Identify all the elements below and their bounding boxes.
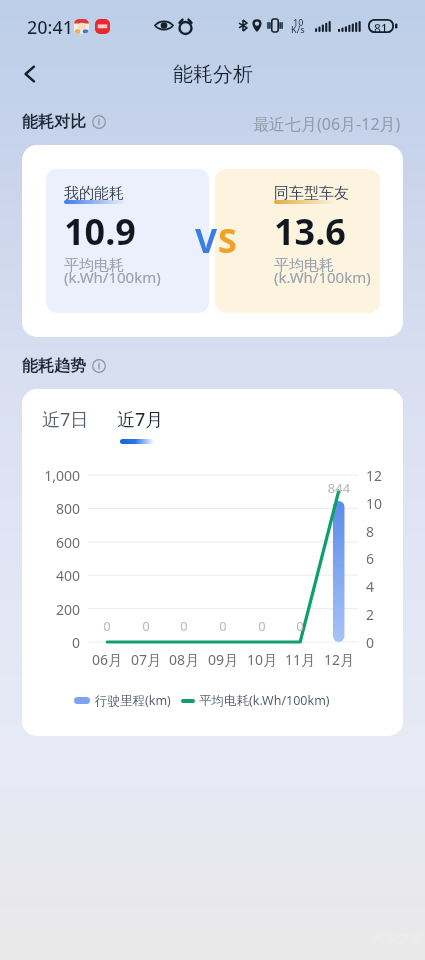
- staticText: 近7月: [117, 407, 164, 432]
- staticText: 2: [366, 605, 386, 624]
- staticText: 11月: [280, 650, 320, 669]
- staticText: 0: [87, 617, 127, 635]
- staticText: 0: [280, 617, 320, 635]
- staticText: 4: [366, 577, 386, 596]
- staticText: 0: [203, 617, 243, 635]
- button[interactable]: Back: [12, 56, 48, 92]
- staticText: 800: [22, 499, 80, 518]
- staticText: 12: [366, 466, 386, 485]
- staticText: 844: [319, 479, 359, 497]
- button[interactable]: 近7日: [42, 407, 89, 432]
- staticText: 我的能耗: [64, 184, 124, 203]
- staticText: 能耗趋势: [22, 356, 86, 376]
- staticText: 10月: [242, 650, 282, 669]
- staticText: 20:41: [27, 15, 74, 40]
- staticText: 10: [366, 494, 386, 513]
- staticText: 0: [126, 617, 166, 635]
- staticText: 1,000: [22, 466, 80, 485]
- staticText: 6: [366, 549, 386, 568]
- staticText: 近7日: [42, 407, 89, 432]
- staticText: 0: [242, 617, 282, 635]
- staticText: 0: [164, 617, 204, 635]
- staticText: S: [218, 217, 237, 263]
- staticText: 10.9: [64, 207, 136, 256]
- staticText: 07月: [126, 650, 166, 669]
- staticText: 同车型车友: [274, 184, 349, 203]
- staticText: 平均电耗: [64, 256, 124, 275]
- staticText: 平均电耗(k.Wh/100km): [199, 692, 330, 709]
- staticText: 0: [22, 633, 80, 652]
- staticText: 平均电耗: [274, 256, 334, 275]
- staticText: 10: [293, 16, 304, 28]
- staticText: 能耗对比: [22, 112, 86, 132]
- staticText: 400: [22, 566, 80, 585]
- staticText: 06月: [87, 650, 127, 669]
- staticText: 行驶里程(km): [95, 692, 171, 709]
- staticText: (k.Wh/100km): [64, 267, 161, 287]
- staticText: 12月: [319, 650, 359, 669]
- staticText: 08月: [164, 650, 204, 669]
- staticText: 200: [22, 600, 80, 619]
- staticText: 600: [22, 533, 80, 552]
- staticText: K/s: [291, 23, 305, 35]
- staticText: 81: [374, 20, 388, 34]
- button[interactable]: 近7月: [117, 407, 164, 444]
- staticText: 09月: [203, 650, 243, 669]
- staticText: 能耗分析: [173, 62, 253, 87]
- staticText: 13.6: [274, 207, 346, 256]
- staticText: (k.Wh/100km): [274, 267, 371, 287]
- staticText: 8: [366, 522, 386, 541]
- staticText: 0: [366, 633, 386, 652]
- staticText: 最近七月(06月-12月): [253, 113, 401, 135]
- staticText: V: [195, 217, 218, 263]
